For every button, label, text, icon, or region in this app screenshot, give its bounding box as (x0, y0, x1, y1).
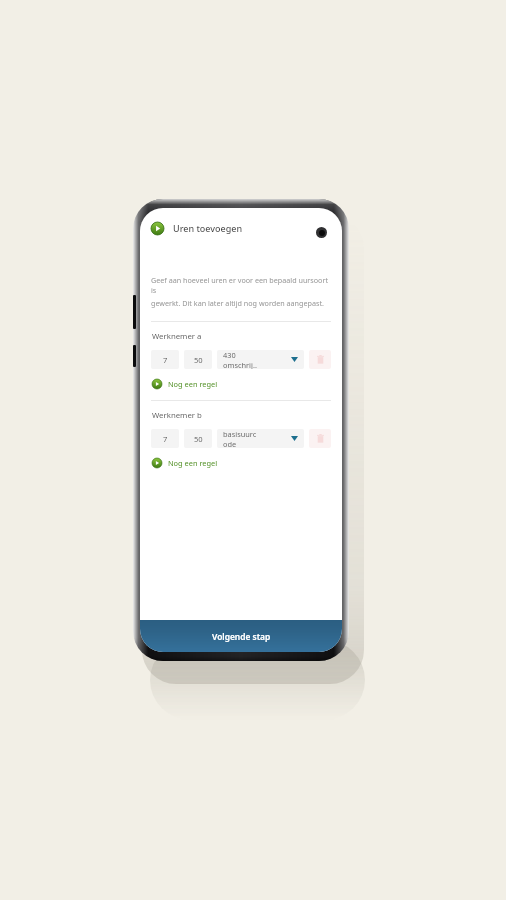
staticText: 7 (163, 355, 168, 365)
staticText: Volgende stap (212, 631, 271, 642)
staticText: basisuurcode (223, 429, 257, 448)
staticText: Geef aan hoeveel uren er voor een bepaal… (151, 275, 331, 295)
button[interactable]: Verwijderen (309, 350, 331, 369)
button[interactable]: 50 (184, 350, 212, 369)
button[interactable]: basisuurcode (217, 429, 304, 448)
button[interactable]: Uren toevoegen (140, 208, 342, 248)
button[interactable]: Volgende stap (140, 620, 342, 652)
staticText: gewerkt. Dit kan later altijd nog worden… (151, 298, 324, 308)
staticText: 50 (194, 434, 203, 444)
staticText: Nog een regel (168, 379, 218, 389)
button[interactable]: 7 (151, 429, 179, 448)
button[interactable]: Nog een regel (140, 457, 226, 469)
staticText: Werknemer b (152, 410, 202, 421)
button[interactable]: 50 (184, 429, 212, 448)
staticText: 50 (194, 355, 203, 365)
staticText: 7 (163, 434, 168, 444)
button[interactable]: 430 omschrij... (217, 350, 304, 369)
staticText: Nog een regel (168, 458, 218, 468)
button[interactable]: Verwijderen (309, 429, 331, 448)
staticText: 430 omschrij... (223, 350, 257, 369)
staticText: Werknemer a (152, 331, 202, 342)
button[interactable]: Nog een regel (140, 378, 226, 390)
button[interactable]: 7 (151, 350, 179, 369)
staticText: Uren toevoegen (173, 222, 243, 234)
